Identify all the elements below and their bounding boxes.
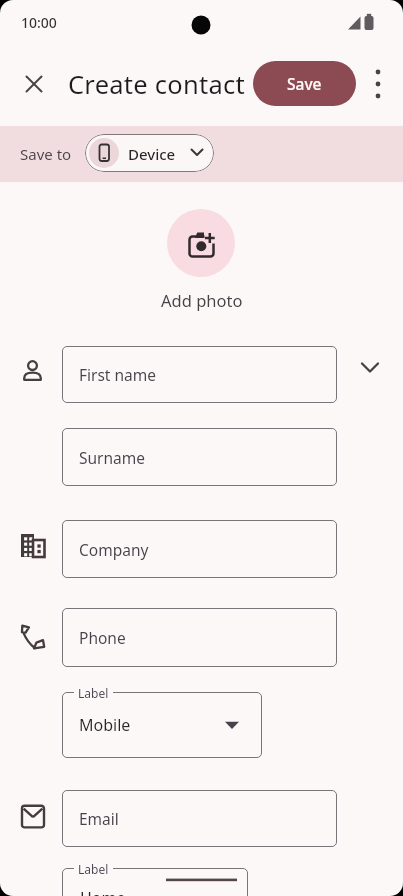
staticText: Mobile — [79, 714, 131, 736]
staticText: Home — [80, 887, 126, 896]
button[interactable]: Phone — [62, 608, 337, 667]
button[interactable] — [85, 134, 214, 172]
button[interactable] — [167, 209, 235, 277]
button[interactable] — [362, 68, 394, 100]
button[interactable]: Email — [62, 790, 337, 847]
staticText: Company — [79, 539, 149, 560]
button[interactable] — [62, 868, 248, 896]
staticText: Surname — [79, 447, 145, 468]
staticText: Label — [78, 685, 109, 701]
staticText: Device — [128, 144, 176, 164]
button[interactable]: Save — [253, 61, 356, 106]
staticText: Create contact — [68, 67, 245, 102]
staticText: Add photo — [161, 289, 243, 311]
staticText: Save to — [20, 144, 72, 164]
staticText: First name — [79, 364, 157, 385]
button[interactable]: Surname — [62, 428, 337, 486]
button[interactable]: Mobile — [62, 692, 262, 758]
button[interactable]: Company — [62, 520, 337, 578]
staticText: Save — [287, 73, 322, 94]
button[interactable]: First name — [62, 346, 337, 403]
staticText: 10:00 — [21, 13, 57, 32]
button[interactable] — [18, 68, 50, 100]
staticText: Phone — [79, 627, 126, 648]
staticText: Email — [79, 808, 119, 829]
staticText: Label — [78, 861, 109, 877]
